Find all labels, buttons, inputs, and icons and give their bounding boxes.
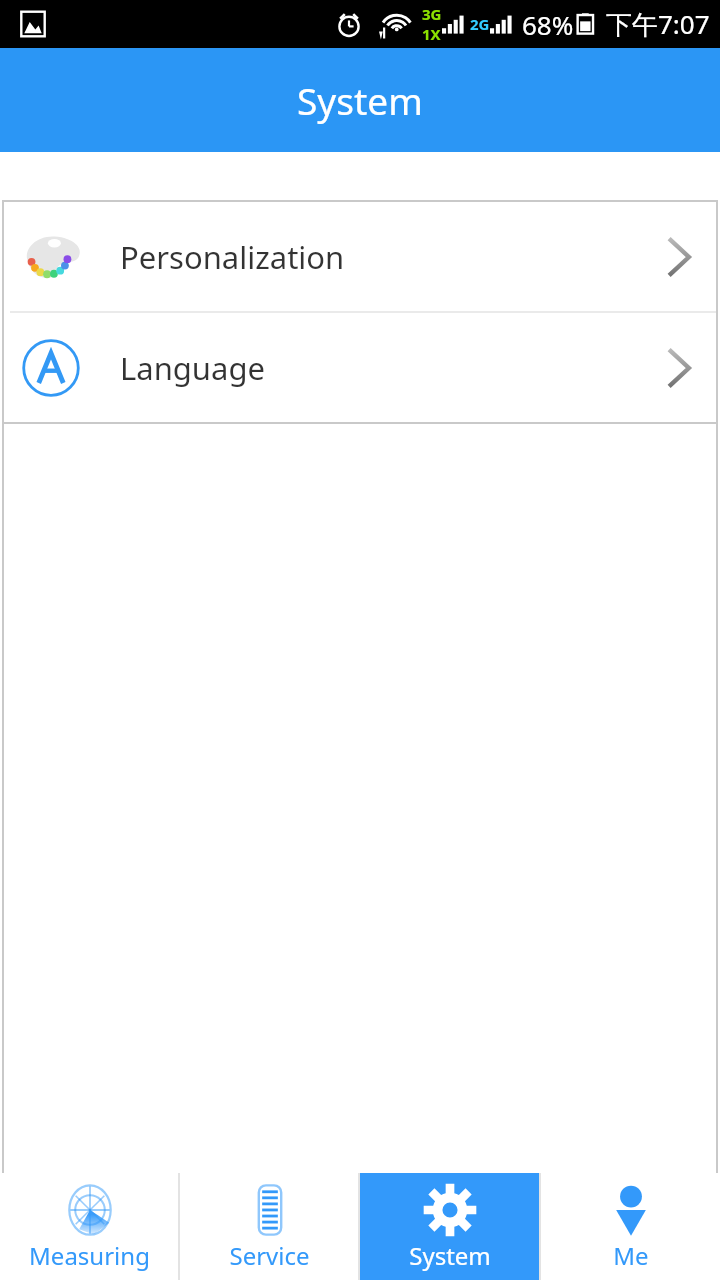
staticText: System (409, 1239, 491, 1272)
button[interactable]: Service (180, 1173, 358, 1280)
staticText: 1X (422, 24, 441, 44)
staticText: Service (229, 1239, 310, 1272)
button[interactable]: Me (541, 1173, 720, 1280)
staticText: Me (613, 1239, 649, 1272)
staticText: Language (120, 347, 265, 389)
staticText: Measuring (29, 1239, 150, 1272)
button[interactable]: System (360, 1173, 539, 1280)
staticText: 下午7:07 (606, 6, 710, 42)
button[interactable]: Language (2, 313, 718, 422)
button[interactable]: Measuring (0, 1173, 178, 1280)
staticText: 2G (470, 14, 490, 34)
staticText: Personalization (120, 236, 345, 278)
staticText: 68% (522, 7, 574, 42)
staticText: System (297, 75, 423, 125)
button[interactable]: Personalization (2, 202, 718, 311)
staticText: 3G (422, 4, 442, 24)
